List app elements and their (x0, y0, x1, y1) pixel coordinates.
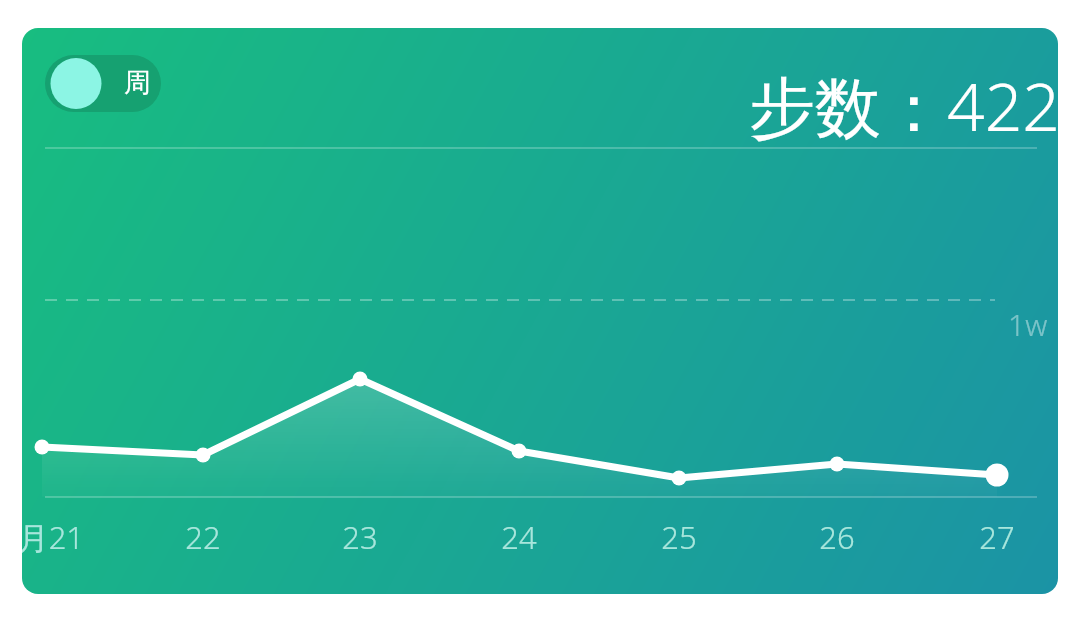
staticText: 25 (609, 516, 749, 564)
staticText: 步数：422 (698, 60, 1058, 160)
staticText: 23 (290, 516, 430, 564)
staticText: 1w (1008, 304, 1058, 350)
staticText: 22 (133, 516, 273, 564)
staticText: 周 (124, 66, 151, 100)
staticText: 26 (767, 516, 907, 564)
staticText: 1月21 (22, 516, 112, 564)
button[interactable]: Switch to week view (45, 55, 161, 112)
staticText: 27 (927, 516, 1058, 564)
staticText: 24 (449, 516, 589, 564)
